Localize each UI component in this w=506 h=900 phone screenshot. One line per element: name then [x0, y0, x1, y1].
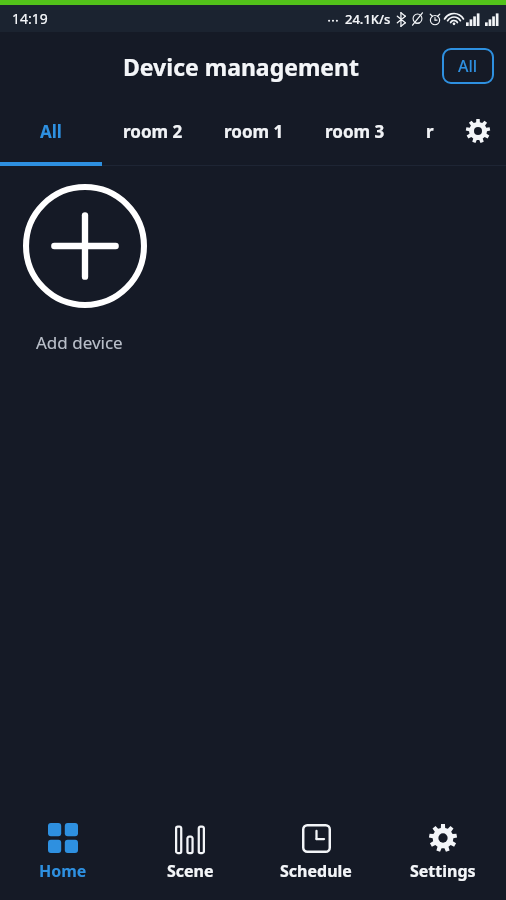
staticText: All: [458, 55, 478, 77]
button[interactable]: Home: [0, 812, 126, 890]
staticText: room 3: [325, 120, 385, 143]
staticText: Home: [39, 860, 87, 882]
staticText: room 1: [224, 120, 284, 143]
staticText: Scene: [167, 860, 214, 882]
button[interactable]: Add device: [22, 183, 152, 354]
button[interactable]: room 3: [304, 100, 405, 162]
button[interactable]: Settings: [380, 812, 506, 890]
button[interactable]: room 1: [203, 100, 304, 162]
staticText: All: [40, 120, 62, 143]
staticText: 14:19: [12, 9, 48, 28]
button[interactable]: Room settings: [455, 108, 501, 154]
staticText: Device management: [123, 51, 359, 82]
staticText: Add device: [36, 331, 123, 354]
staticText: Schedule: [280, 860, 352, 882]
button[interactable]: Scene: [127, 812, 253, 890]
button[interactable]: room 2: [102, 100, 203, 162]
staticText: r: [426, 120, 434, 143]
button[interactable]: r: [405, 100, 455, 162]
button[interactable]: Schedule: [253, 812, 379, 890]
staticText: Settings: [410, 860, 476, 882]
button[interactable]: All: [0, 100, 102, 162]
button[interactable]: All: [442, 48, 494, 84]
staticText: room 2: [123, 120, 183, 143]
staticText: 24.1K/s: [345, 10, 391, 28]
